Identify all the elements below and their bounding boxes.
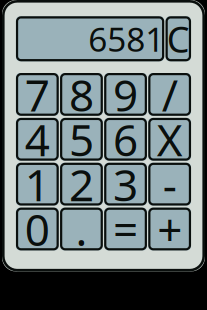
- button[interactable]: 4: [16, 118, 59, 161]
- staticText: 0: [25, 200, 50, 258]
- button[interactable]: /: [148, 73, 191, 116]
- button[interactable]: 2: [60, 163, 103, 205]
- staticText: .: [75, 200, 87, 258]
- button[interactable]: 1: [16, 163, 59, 205]
- button[interactable]: .: [60, 208, 103, 250]
- staticText: -: [163, 155, 177, 213]
- button[interactable]: =: [104, 208, 147, 250]
- staticText: +: [157, 200, 182, 258]
- button[interactable]: -: [148, 163, 191, 205]
- button[interactable]: 7: [16, 73, 59, 116]
- staticText: 7: [25, 65, 50, 124]
- button[interactable]: 0: [16, 208, 59, 250]
- staticText: 3: [113, 155, 138, 213]
- staticText: 6581: [88, 17, 164, 61]
- button[interactable]: 5: [60, 118, 103, 161]
- button[interactable]: 8: [60, 73, 103, 116]
- staticText: 9: [113, 65, 138, 124]
- button[interactable]: C: [166, 16, 191, 61]
- staticText: 2: [69, 155, 94, 213]
- staticText: X: [157, 110, 183, 168]
- staticText: 1: [25, 155, 50, 213]
- button[interactable]: +: [148, 208, 191, 250]
- staticText: 4: [25, 110, 50, 168]
- button[interactable]: X: [148, 118, 191, 161]
- button[interactable]: 3: [104, 163, 147, 205]
- staticText: 6: [113, 110, 138, 168]
- button[interactable]: 9: [104, 73, 147, 116]
- staticText: =: [113, 200, 138, 258]
- staticText: 8: [69, 65, 94, 124]
- staticText: C: [167, 15, 190, 63]
- staticText: 5: [69, 110, 94, 168]
- button[interactable]: 6: [104, 118, 147, 161]
- staticText: /: [162, 65, 178, 124]
